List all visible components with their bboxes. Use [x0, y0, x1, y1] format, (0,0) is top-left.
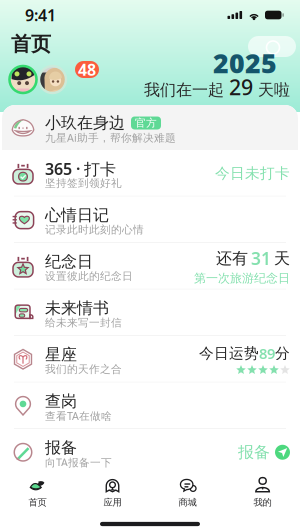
staticText: 九星Ai助手，帮你解决难题 [45, 130, 176, 145]
staticText: 天啦 [253, 80, 290, 100]
staticText: 坚持签到领好礼 [45, 177, 122, 190]
staticText: 365 · 打卡 [45, 158, 116, 179]
staticText: 我们的天作之合 [45, 363, 122, 376]
button[interactable]: 纪念日 [2, 243, 298, 289]
staticText: 还有 [216, 249, 248, 268]
button[interactable]: 小玖在身边 [2, 105, 298, 150]
staticText: 今日运势 [199, 344, 259, 362]
staticText: 未来情书 [45, 298, 109, 318]
button[interactable]: 我的 [225, 478, 300, 514]
staticText: 31 [251, 247, 271, 270]
staticText: 报备 [45, 438, 77, 458]
staticText: 分 [275, 344, 290, 362]
staticText: 纪念日 [45, 252, 93, 272]
button[interactable]: 首页 [0, 478, 75, 514]
staticText: 29 [229, 73, 253, 101]
button[interactable]: 报备 [2, 429, 298, 475]
staticText: 应用 [103, 497, 121, 508]
staticText: 报备 [238, 442, 270, 462]
staticText: 官方 [135, 116, 157, 129]
button[interactable]: 星座 [2, 336, 298, 382]
staticText: 首页 [28, 497, 46, 508]
staticText: 设置彼此的纪念日 [45, 270, 133, 283]
staticText: 商城 [178, 497, 196, 508]
staticText: 第一次旅游纪念日 [194, 271, 290, 286]
staticText: 星座 [45, 345, 77, 365]
button[interactable]: 未来情书 [2, 289, 298, 336]
staticText: 心情日记 [45, 205, 109, 225]
staticText: 查岗 [45, 391, 77, 411]
button[interactable]: 商城 [150, 478, 225, 514]
staticText: 89 [259, 343, 275, 363]
staticText: 我们在一起 [144, 80, 229, 100]
staticText: 小玖在身边 [45, 113, 125, 133]
staticText: 48 [78, 59, 96, 80]
staticText: 我的 [253, 497, 271, 508]
staticText: 2025 [213, 45, 277, 81]
staticText: 9:41 [25, 4, 56, 26]
staticText: 查看TA在做啥 [45, 409, 112, 423]
button[interactable]: 查岗 [2, 382, 298, 429]
staticText: 给未来写一封信 [45, 316, 122, 329]
button[interactable]: 心情日记 [2, 196, 298, 243]
button[interactable]: 365 · 打卡 [2, 150, 298, 196]
staticText: 向TA报备一下 [45, 455, 112, 469]
staticText: 首页 [11, 32, 51, 56]
staticText: 今日未打卡 [215, 164, 290, 182]
staticText: 天 [274, 249, 290, 268]
staticText: 记录此时此刻的心情 [45, 223, 144, 236]
button[interactable]: 应用 [75, 478, 150, 514]
